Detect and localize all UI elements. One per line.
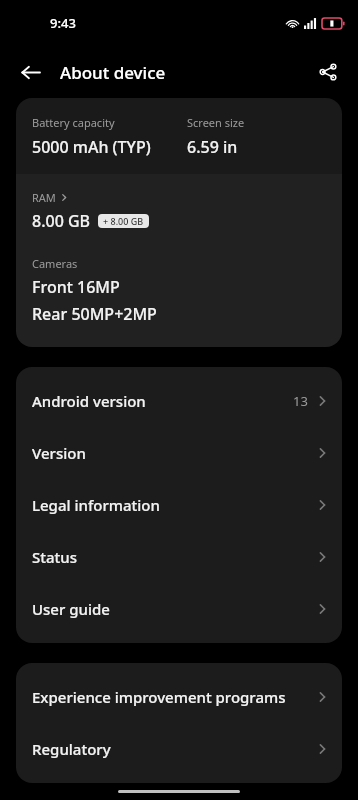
staticText: Rear 50MP+2MP [32,303,157,325]
button[interactable]: Status [16,531,342,583]
button[interactable]: Version [16,427,342,479]
button[interactable]: Back [10,52,50,92]
staticText: Cameras [32,256,78,271]
staticText: Android version [32,391,293,411]
staticText: 9:43 [50,14,76,32]
button[interactable]: Legal information [16,479,342,531]
staticText: Version [32,443,314,463]
staticText: Screen size [187,115,245,130]
staticText: Experience improvement programs [32,687,314,707]
staticText: RAM [32,190,56,205]
staticText: 8.00 GB [32,210,91,232]
staticText: About device [60,61,166,84]
button[interactable]: User guide [16,583,342,635]
button[interactable]: RAM [32,190,70,205]
button[interactable]: Regulatory [16,723,342,775]
staticText: 13 [293,392,308,410]
button[interactable]: Android version [16,375,342,427]
staticText: Front 16MP [32,276,120,298]
staticText: User guide [32,599,314,619]
button[interactable]: Experience improvement programs [16,671,342,723]
staticText: Battery capacity [32,115,115,130]
staticText: Status [32,547,314,567]
staticText: 5000 mAh (TYP) [32,136,151,158]
staticText: 6.59 in [187,136,238,158]
button[interactable]: Share [308,52,348,92]
staticText: + 8.00 GB [103,215,144,227]
staticText: Legal information [32,495,314,515]
staticText: Regulatory [32,739,314,759]
